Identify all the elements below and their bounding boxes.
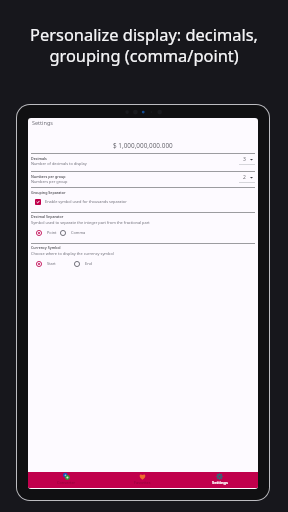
staticText: Grouping Separator	[31, 190, 66, 195]
staticText: Numbers per group	[31, 174, 66, 179]
staticText: Settings	[212, 480, 228, 485]
staticText: Settings	[32, 119, 53, 126]
button[interactable]: Decimals	[28, 155, 258, 172]
staticText: 3	[243, 156, 246, 163]
staticText: Converter	[57, 480, 76, 485]
button[interactable]: Converter	[28, 472, 104, 488]
staticText: Start	[47, 261, 56, 266]
button[interactable]: 2	[239, 173, 255, 183]
staticText: 2	[243, 174, 246, 181]
other: Settings	[216, 473, 223, 480]
button[interactable]: Numbers per group	[28, 173, 258, 190]
other: Converter	[63, 473, 70, 480]
button[interactable]: Settings	[181, 472, 258, 488]
staticText: Enable symbol used for thousands separat…	[45, 199, 127, 204]
button[interactable]: Favorites	[104, 472, 181, 488]
staticText: Decimal Separator	[31, 214, 64, 219]
button[interactable]: Start	[31, 259, 58, 268]
staticText: Numbers per group	[31, 179, 68, 184]
staticText: Comma	[71, 230, 86, 235]
button[interactable]: Comma	[60, 228, 88, 237]
other: Favorites	[139, 473, 146, 480]
button[interactable]: Point	[31, 228, 59, 237]
staticText: End	[85, 261, 92, 266]
staticText: Symbol used to separate the integer part…	[31, 220, 150, 225]
staticText: Point	[47, 230, 57, 235]
button[interactable]: Enable symbol used for thousands separat…	[31, 197, 131, 206]
staticText: Choose where to display the currency sym…	[31, 251, 114, 256]
staticText: $ 1,000,000,000.000	[113, 141, 173, 150]
staticText: Personalize display: decimals, grouping …	[6, 23, 282, 67]
button[interactable]: 3	[239, 155, 255, 165]
staticText: Currency Symbol	[31, 245, 61, 250]
staticText: Number of decimals to display	[31, 161, 87, 166]
staticText: Favorites	[134, 480, 151, 485]
button[interactable]: End	[74, 259, 94, 268]
staticText: Decimals	[31, 156, 47, 161]
